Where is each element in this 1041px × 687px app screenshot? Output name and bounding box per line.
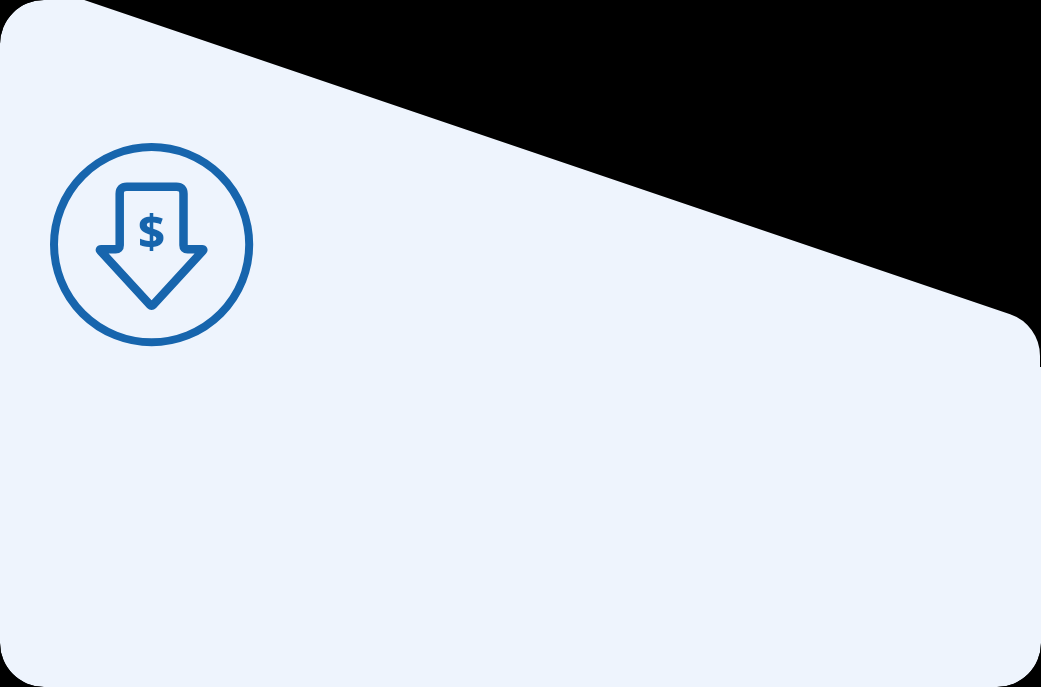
staticText: $ bbox=[138, 198, 165, 262]
button[interactable]: Price drop bbox=[50, 143, 253, 346]
